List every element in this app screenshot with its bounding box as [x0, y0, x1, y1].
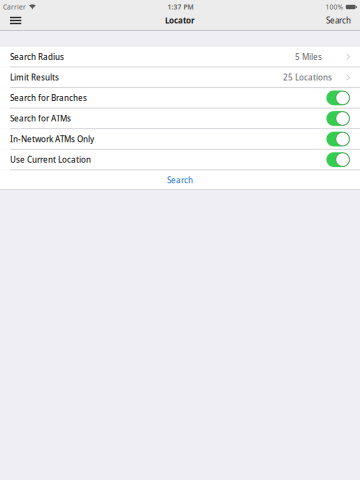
- staticText: In-Network ATMs Only: [10, 134, 94, 144]
- staticText: Use Current Location: [10, 154, 91, 165]
- staticText: Search: [167, 175, 193, 185]
- staticText: Search Radius: [10, 51, 64, 62]
- button[interactable]: Search Radius: [0, 47, 360, 67]
- button[interactable]: Search: [0, 170, 360, 190]
- button[interactable]: Use Current Location: [0, 150, 360, 169]
- button[interactable]: Search for Branches: [0, 88, 360, 108]
- staticText: Search for Branches: [10, 93, 87, 103]
- staticText: Locator: [165, 15, 195, 26]
- staticText: 100%: [325, 3, 343, 11]
- staticText: 1:37 PM: [168, 3, 194, 11]
- staticText: 5 Miles: [295, 51, 322, 62]
- staticText: Search for ATMs: [10, 113, 71, 124]
- button[interactable]: Menu: [0, 14, 29, 27]
- button[interactable]: Limit Results: [0, 68, 360, 87]
- button[interactable]: Search: [318, 12, 360, 29]
- staticText: Search: [326, 15, 351, 26]
- staticText: Carrier: [3, 3, 26, 11]
- staticText: Limit Results: [10, 72, 59, 83]
- button[interactable]: In-Network ATMs Only: [0, 129, 360, 149]
- staticText: 25 Locations: [283, 72, 332, 83]
- button[interactable]: Search for ATMs: [0, 109, 360, 128]
